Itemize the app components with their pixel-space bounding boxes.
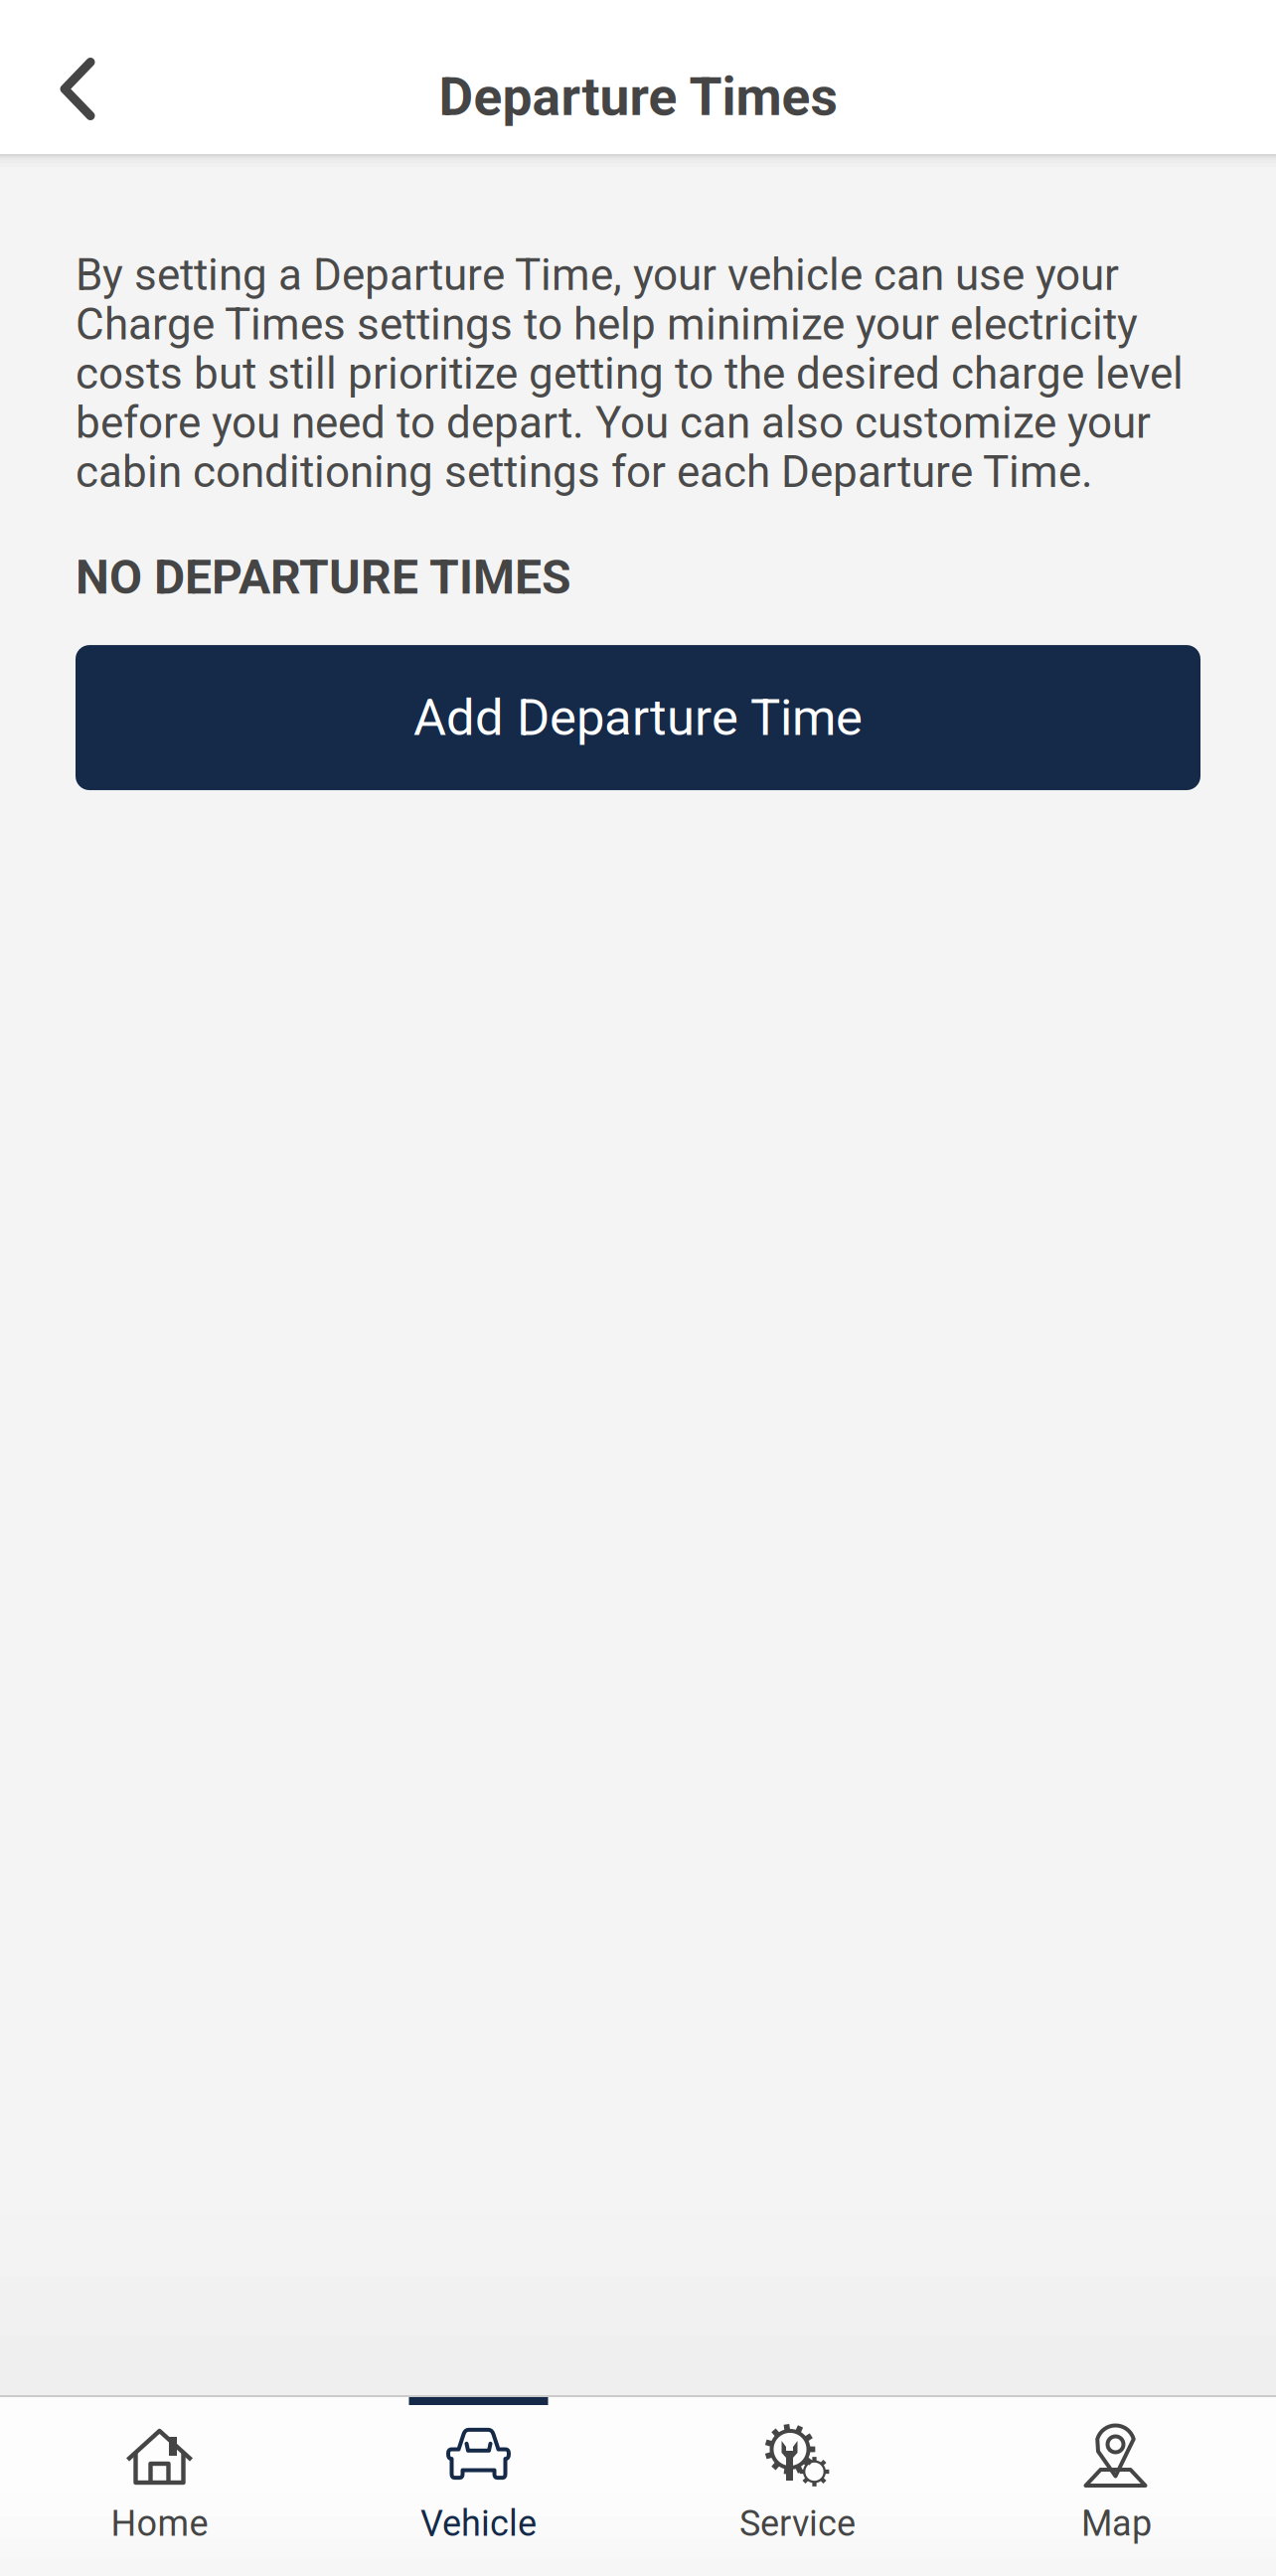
button[interactable]: Add Departure Time — [76, 645, 1200, 790]
staticText: Map — [1081, 2502, 1152, 2544]
staticText: Departure Times — [439, 66, 837, 128]
button[interactable]: Service — [638, 2397, 957, 2576]
button[interactable]: Vehicle — [319, 2397, 638, 2576]
button[interactable]: Back — [18, 0, 127, 154]
staticText: Home — [111, 2502, 208, 2544]
button[interactable]: Home — [0, 2397, 319, 2576]
button[interactable]: Map — [957, 2397, 1276, 2576]
staticText: By setting a Departure Time, your vehicl… — [76, 249, 1184, 498]
staticText: Service — [739, 2502, 856, 2544]
staticText: Add Departure Time — [413, 688, 863, 747]
staticText: NO DEPARTURE TIMES — [76, 549, 571, 605]
staticText: Vehicle — [420, 2502, 537, 2544]
